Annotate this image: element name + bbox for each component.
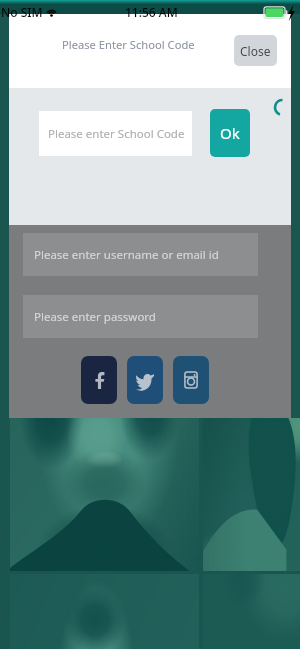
staticText: Please Enter School Code [62, 37, 195, 52]
button[interactable]: Ok [210, 109, 250, 157]
staticText: Please enter password [34, 309, 156, 325]
button[interactable]: Twitter [127, 356, 163, 404]
button[interactable]: Close [234, 35, 277, 66]
button[interactable]: Please enter School Code [39, 111, 192, 156]
button[interactable]: Instagram [173, 356, 209, 404]
staticText: Please enter School Code [48, 126, 185, 142]
button[interactable]: Please enter username or email id [23, 233, 258, 276]
staticText: Please enter username or email id [34, 247, 219, 263]
staticText: Ok [220, 123, 240, 143]
button[interactable]: Please enter password [23, 295, 258, 338]
staticText: No SIM [1, 4, 43, 20]
staticText: 11:56 AM [125, 4, 178, 20]
staticText: Close [240, 43, 271, 59]
button[interactable]: Facebook [81, 356, 117, 404]
